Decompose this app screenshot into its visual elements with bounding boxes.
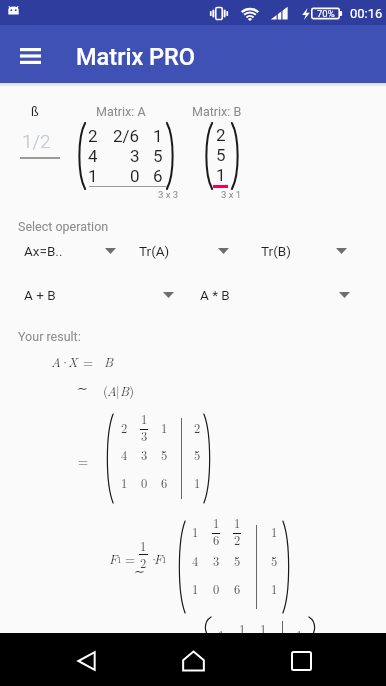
staticText: (: [103, 381, 109, 399]
staticText: 1: [213, 514, 220, 528]
staticText: 5: [153, 146, 163, 166]
staticText: 1: [271, 523, 278, 539]
staticText: 6: [161, 474, 168, 490]
staticText: F: [109, 549, 118, 567]
staticText: F: [154, 549, 163, 567]
staticText: ∼: [77, 381, 88, 396]
staticText: B: [120, 381, 130, 399]
staticText: 4: [88, 146, 98, 166]
staticText: 0: [141, 474, 148, 490]
staticText: X: [68, 352, 78, 370]
staticText: Ax=B..: [24, 243, 63, 259]
staticText: Matrix: B: [192, 104, 242, 119]
staticText: 2: [88, 126, 98, 146]
button[interactable]: Open navigation menu: [11, 37, 49, 75]
staticText: |: [116, 381, 120, 399]
staticText: 2: [216, 125, 226, 145]
button[interactable]: Recent apps: [277, 637, 325, 685]
button[interactable]: Home: [169, 637, 217, 685]
staticText: 1: [88, 166, 98, 186]
staticText: 3: [130, 146, 140, 166]
button[interactable]: Back: [62, 637, 110, 685]
staticText: =: [125, 549, 136, 567]
staticText: 3: [213, 552, 220, 568]
staticText: 0: [130, 166, 140, 186]
button[interactable]: Ax=B..: [24, 237, 116, 265]
staticText: =: [78, 451, 89, 469]
staticText: 3 x 3: [158, 189, 179, 200]
staticText: 1: [161, 419, 168, 435]
staticText: 1: [271, 580, 278, 596]
staticText: 1: [194, 474, 201, 490]
button[interactable]: Tr(A): [139, 237, 229, 265]
staticText: 6: [213, 531, 220, 545]
staticText: 2: [121, 419, 128, 435]
staticText: 3: [141, 427, 148, 441]
staticText: 1: [239, 620, 246, 633]
staticText: 1: [141, 410, 148, 424]
staticText: ): [129, 381, 135, 399]
staticText: 4: [121, 446, 128, 462]
staticText: Tr(A): [139, 243, 170, 259]
staticText: Tr(B): [261, 243, 291, 259]
staticText: Your result:: [18, 329, 81, 344]
button[interactable]: Tr(B): [261, 237, 347, 265]
staticText: 1: [153, 126, 163, 146]
staticText: 3: [141, 446, 148, 462]
staticText: =: [83, 352, 94, 370]
staticText: 2: [194, 419, 201, 435]
staticText: 5: [216, 145, 226, 165]
staticText: Matrix: A: [96, 104, 146, 119]
staticText: 70%: [317, 8, 335, 19]
staticText: 00:16: [350, 6, 383, 21]
staticText: 1/2: [22, 130, 51, 152]
staticText: 1: [140, 537, 147, 551]
staticText: 0: [213, 580, 220, 596]
staticText: A + B: [24, 287, 56, 303]
staticText: 1: [234, 514, 241, 528]
staticText: A: [107, 381, 117, 399]
staticText: ·: [60, 352, 71, 370]
staticText: 1: [218, 626, 225, 633]
staticText: Select operation: [18, 219, 109, 234]
staticText: 1: [216, 165, 226, 185]
staticText: 1: [162, 553, 167, 566]
staticText: A: [51, 352, 61, 370]
staticText: 1: [192, 580, 199, 596]
staticText: ∼: [134, 564, 145, 579]
staticText: 4: [192, 552, 199, 568]
staticText: 5: [161, 446, 168, 462]
staticText: 1: [117, 553, 122, 566]
staticText: 6: [234, 580, 241, 596]
staticText: ß: [31, 104, 39, 119]
staticText: 2/6: [113, 126, 140, 146]
staticText: A * B: [200, 287, 230, 303]
staticText: 1: [260, 620, 267, 633]
staticText: 1: [192, 523, 199, 539]
staticText: 5: [194, 446, 201, 462]
staticText: 2: [234, 531, 241, 545]
button[interactable]: A * B: [200, 281, 350, 309]
staticText: 5: [234, 552, 241, 568]
staticText: B: [104, 352, 114, 370]
staticText: 1: [296, 626, 303, 633]
staticText: 1: [121, 474, 128, 490]
staticText: Matrix PRO: [76, 43, 196, 71]
button[interactable]: A + B: [24, 281, 174, 309]
staticText: 2: [140, 554, 147, 568]
staticText: 6: [153, 166, 163, 186]
staticText: ·: [149, 549, 160, 567]
staticText: 3 x 1: [221, 189, 242, 200]
staticText: 5: [271, 552, 278, 568]
